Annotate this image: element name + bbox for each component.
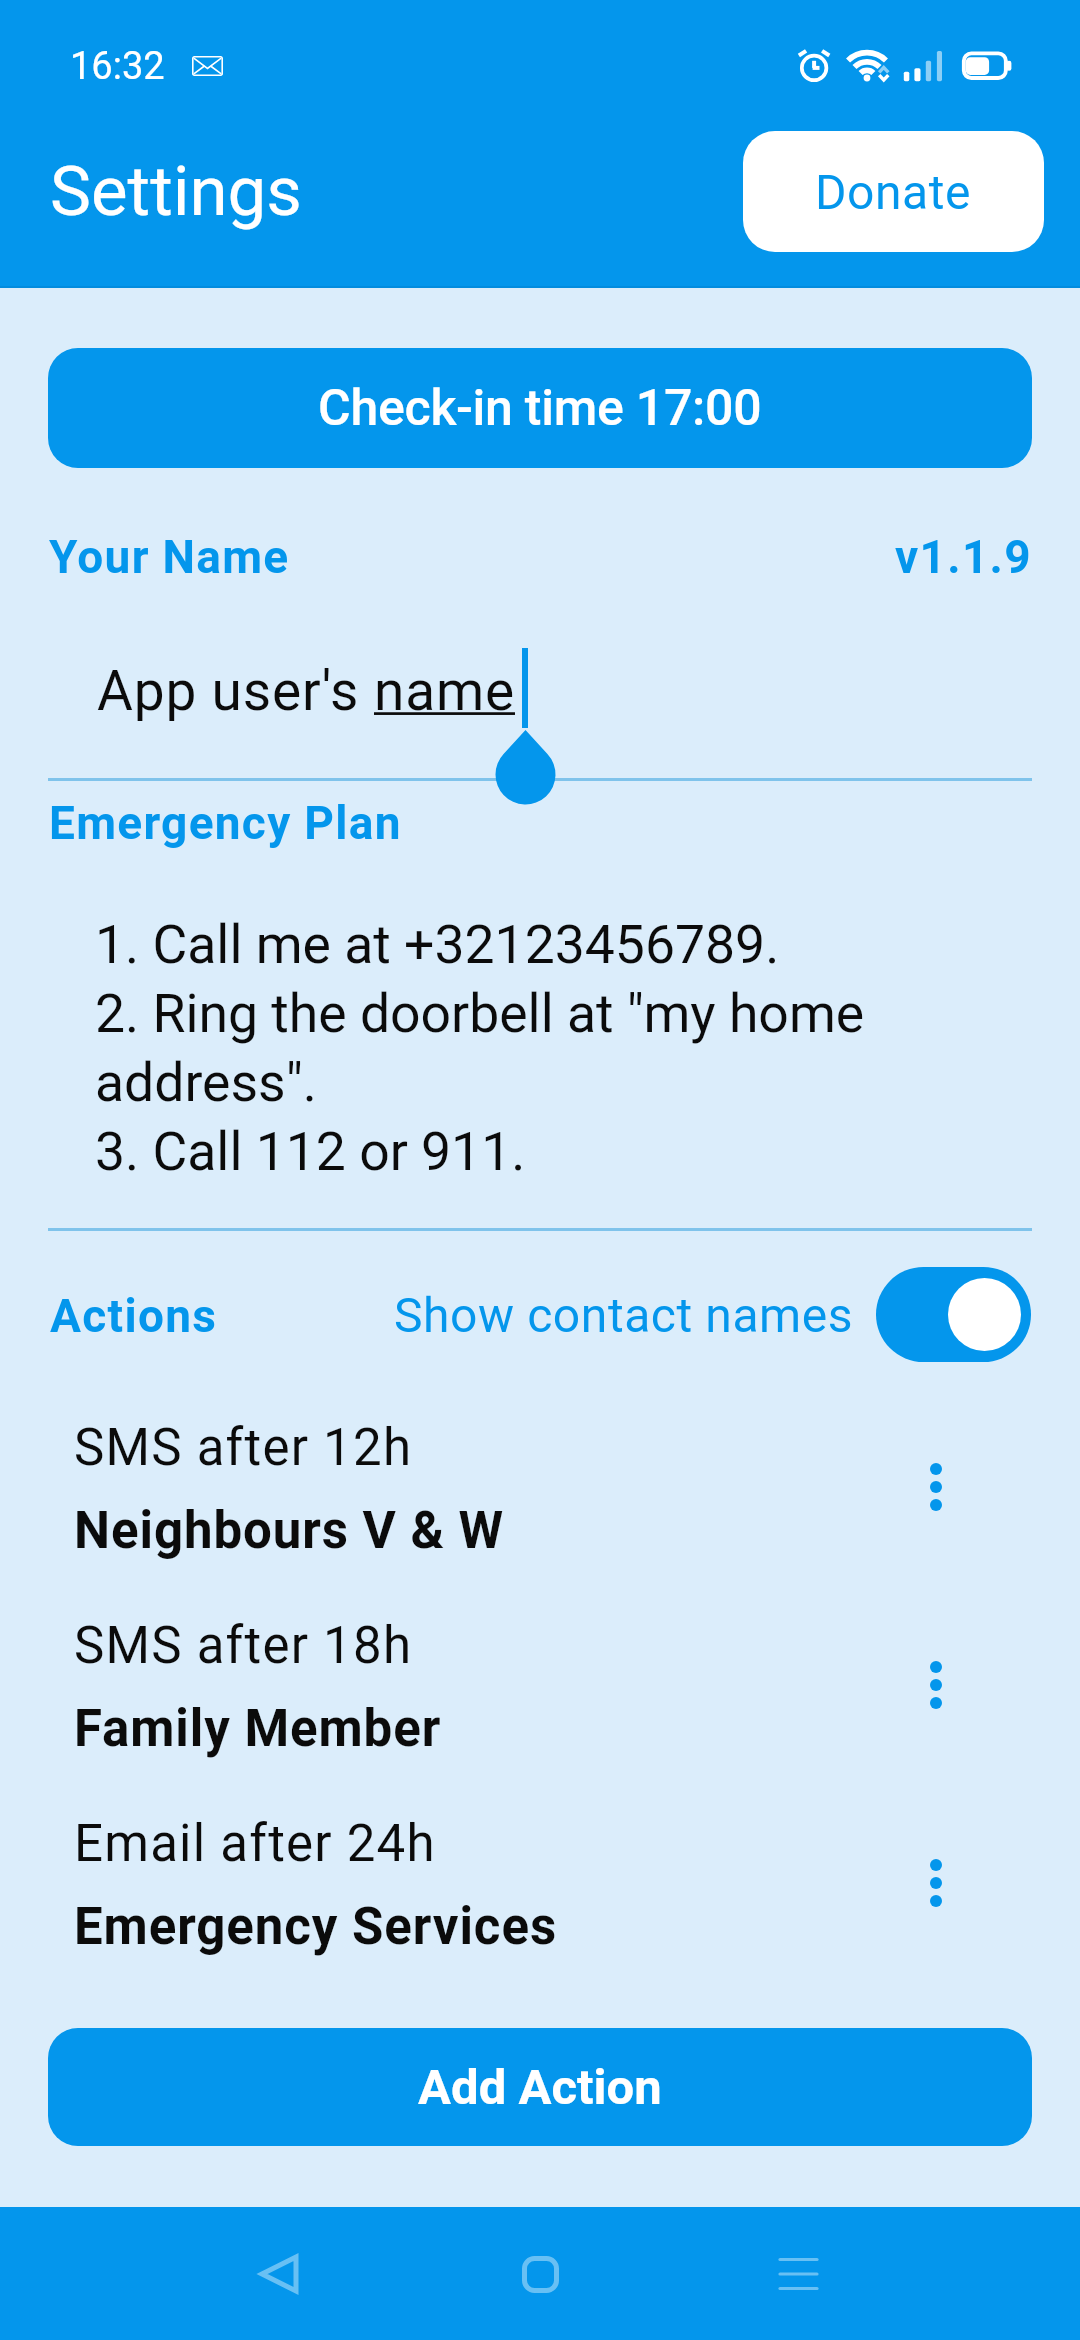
staticText: Emergency Services — [74, 1897, 558, 1957]
staticText: Emergency Plan — [49, 796, 402, 850]
staticText: Add Action — [418, 2059, 662, 2116]
button[interactable]: More options — [888, 1637, 984, 1733]
staticText: Your Name — [49, 530, 290, 584]
staticText: name — [374, 659, 515, 723]
staticText: Settings — [50, 151, 302, 232]
staticText: Show contact names — [394, 1287, 854, 1343]
staticText: Email after 24h — [74, 1814, 436, 1874]
button[interactable]: Check-in time 17:00 — [48, 348, 1032, 468]
staticText: v1.1.9 — [895, 530, 1032, 584]
button[interactable]: Back — [231, 2226, 327, 2322]
staticText: Actions — [50, 1289, 218, 1343]
button[interactable] — [0, 1788, 1080, 1978]
button[interactable]: More options — [888, 1439, 984, 1535]
button[interactable]: Home — [492, 2226, 588, 2322]
button[interactable] — [0, 1590, 1080, 1780]
button[interactable]: Recent apps — [750, 2226, 846, 2322]
staticText: Family Member — [74, 1699, 442, 1759]
staticText: 1. Call me at +32123456789. 2. Ring the … — [95, 913, 1007, 1183]
staticText: SMS after 12h — [74, 1418, 413, 1478]
button[interactable]: Add Action — [48, 2028, 1032, 2146]
staticText: App user's — [97, 659, 374, 723]
button[interactable]: Donate — [743, 131, 1044, 252]
staticText: Donate — [815, 164, 972, 220]
button[interactable] — [0, 1392, 1080, 1582]
staticText: 16:32 — [70, 44, 165, 89]
staticText: SMS after 18h — [74, 1616, 413, 1676]
button[interactable]: Show contact names — [876, 1267, 1031, 1362]
staticText: Neighbours V & W — [74, 1501, 505, 1561]
button[interactable]: More options — [888, 1835, 984, 1931]
staticText: Check-in time 17:00 — [318, 379, 762, 438]
